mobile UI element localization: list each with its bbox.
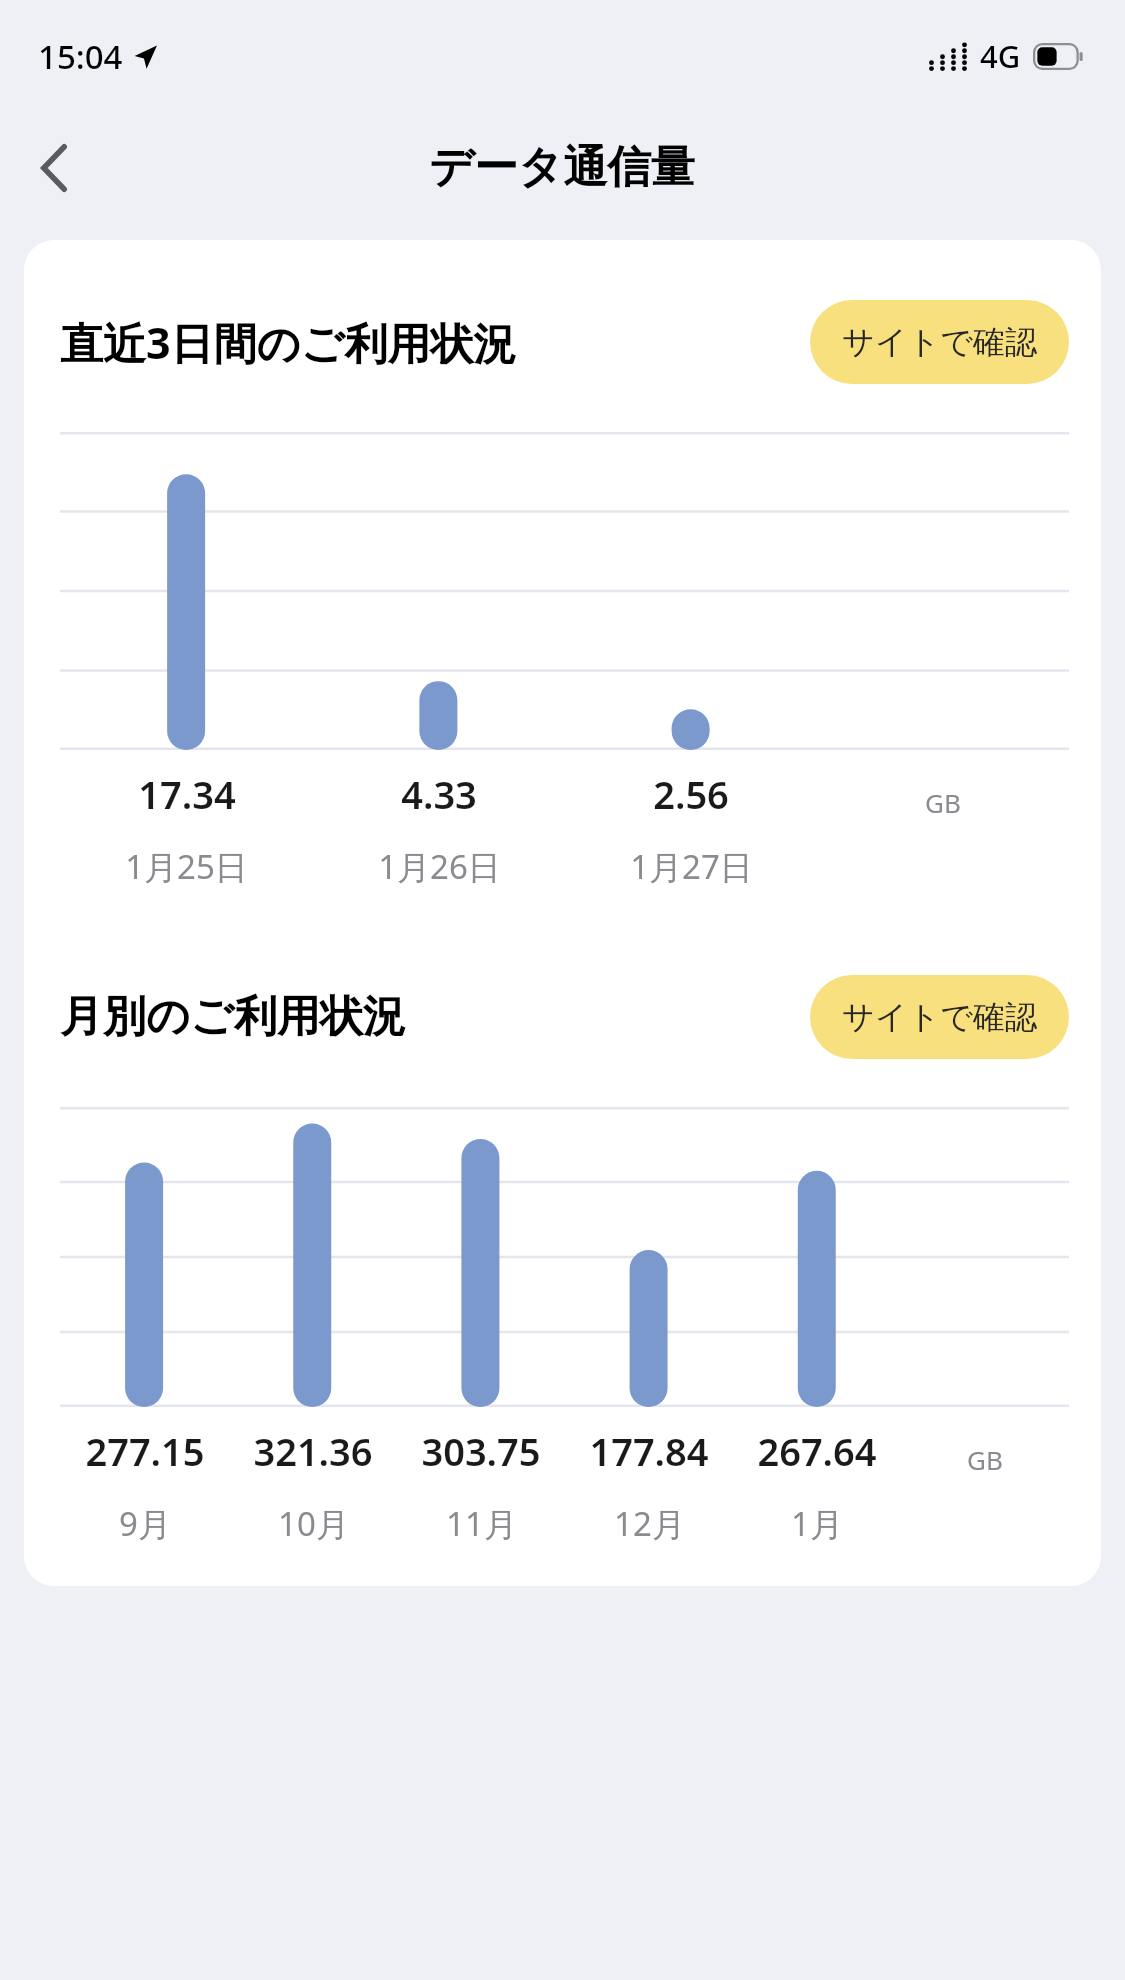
staticText: 177.84 <box>589 1425 709 1477</box>
staticText: 月別のご利用状況 <box>60 990 407 1044</box>
staticText: 1月27日 <box>630 844 753 889</box>
staticText: データ通信量 <box>429 140 696 195</box>
staticText: 4.33 <box>401 768 477 820</box>
staticText: サイトで確認 <box>842 997 1037 1037</box>
staticText: 15:04 <box>38 34 123 79</box>
button[interactable]: Back <box>18 132 90 204</box>
staticText: 1月26日 <box>378 844 501 889</box>
staticText: 1月25日 <box>125 844 248 889</box>
staticText: 10月 <box>278 1501 349 1546</box>
staticText: 2.56 <box>653 768 729 820</box>
staticText: サイトで確認 <box>842 322 1037 362</box>
staticText: 321.36 <box>253 1425 373 1477</box>
staticText: 9月 <box>119 1501 171 1546</box>
staticText: 267.64 <box>757 1425 877 1477</box>
staticText: 303.75 <box>421 1425 541 1477</box>
staticText: 12月 <box>614 1501 685 1546</box>
staticText: 11月 <box>446 1501 517 1546</box>
staticText: 277.15 <box>85 1425 205 1477</box>
staticText: 1月 <box>791 1501 843 1546</box>
staticText: 直近3日間のご利用状況 <box>60 313 517 372</box>
staticText: GB <box>925 785 961 820</box>
staticText: 17.34 <box>138 768 236 820</box>
button[interactable]: サイトで確認 <box>810 300 1069 384</box>
staticText: 4G <box>980 35 1021 77</box>
staticText: GB <box>967 1442 1003 1477</box>
button[interactable]: サイトで確認 <box>810 975 1069 1059</box>
